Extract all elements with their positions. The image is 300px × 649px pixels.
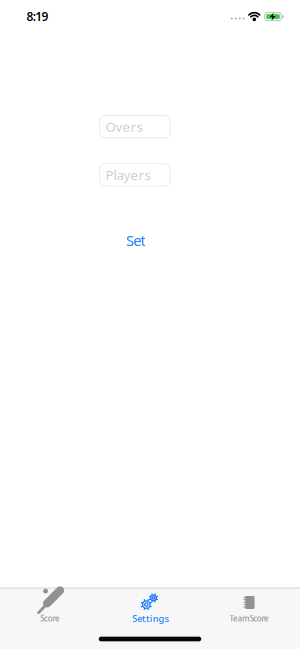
button[interactable]: Overs xyxy=(100,116,170,138)
staticText: Players xyxy=(106,166,151,184)
button[interactable]: TeamScore xyxy=(200,587,300,649)
staticText: Score xyxy=(40,613,60,624)
staticText: Settings xyxy=(132,612,169,624)
button[interactable]: Players xyxy=(100,164,170,186)
staticText: Set xyxy=(126,230,145,250)
button[interactable]: Score xyxy=(0,587,100,649)
staticText: Overs xyxy=(106,118,143,135)
button[interactable]: Set xyxy=(126,230,145,250)
button[interactable]: Settings xyxy=(100,587,200,649)
staticText: 8:19 xyxy=(27,8,48,24)
staticText: TeamScore xyxy=(229,613,269,624)
